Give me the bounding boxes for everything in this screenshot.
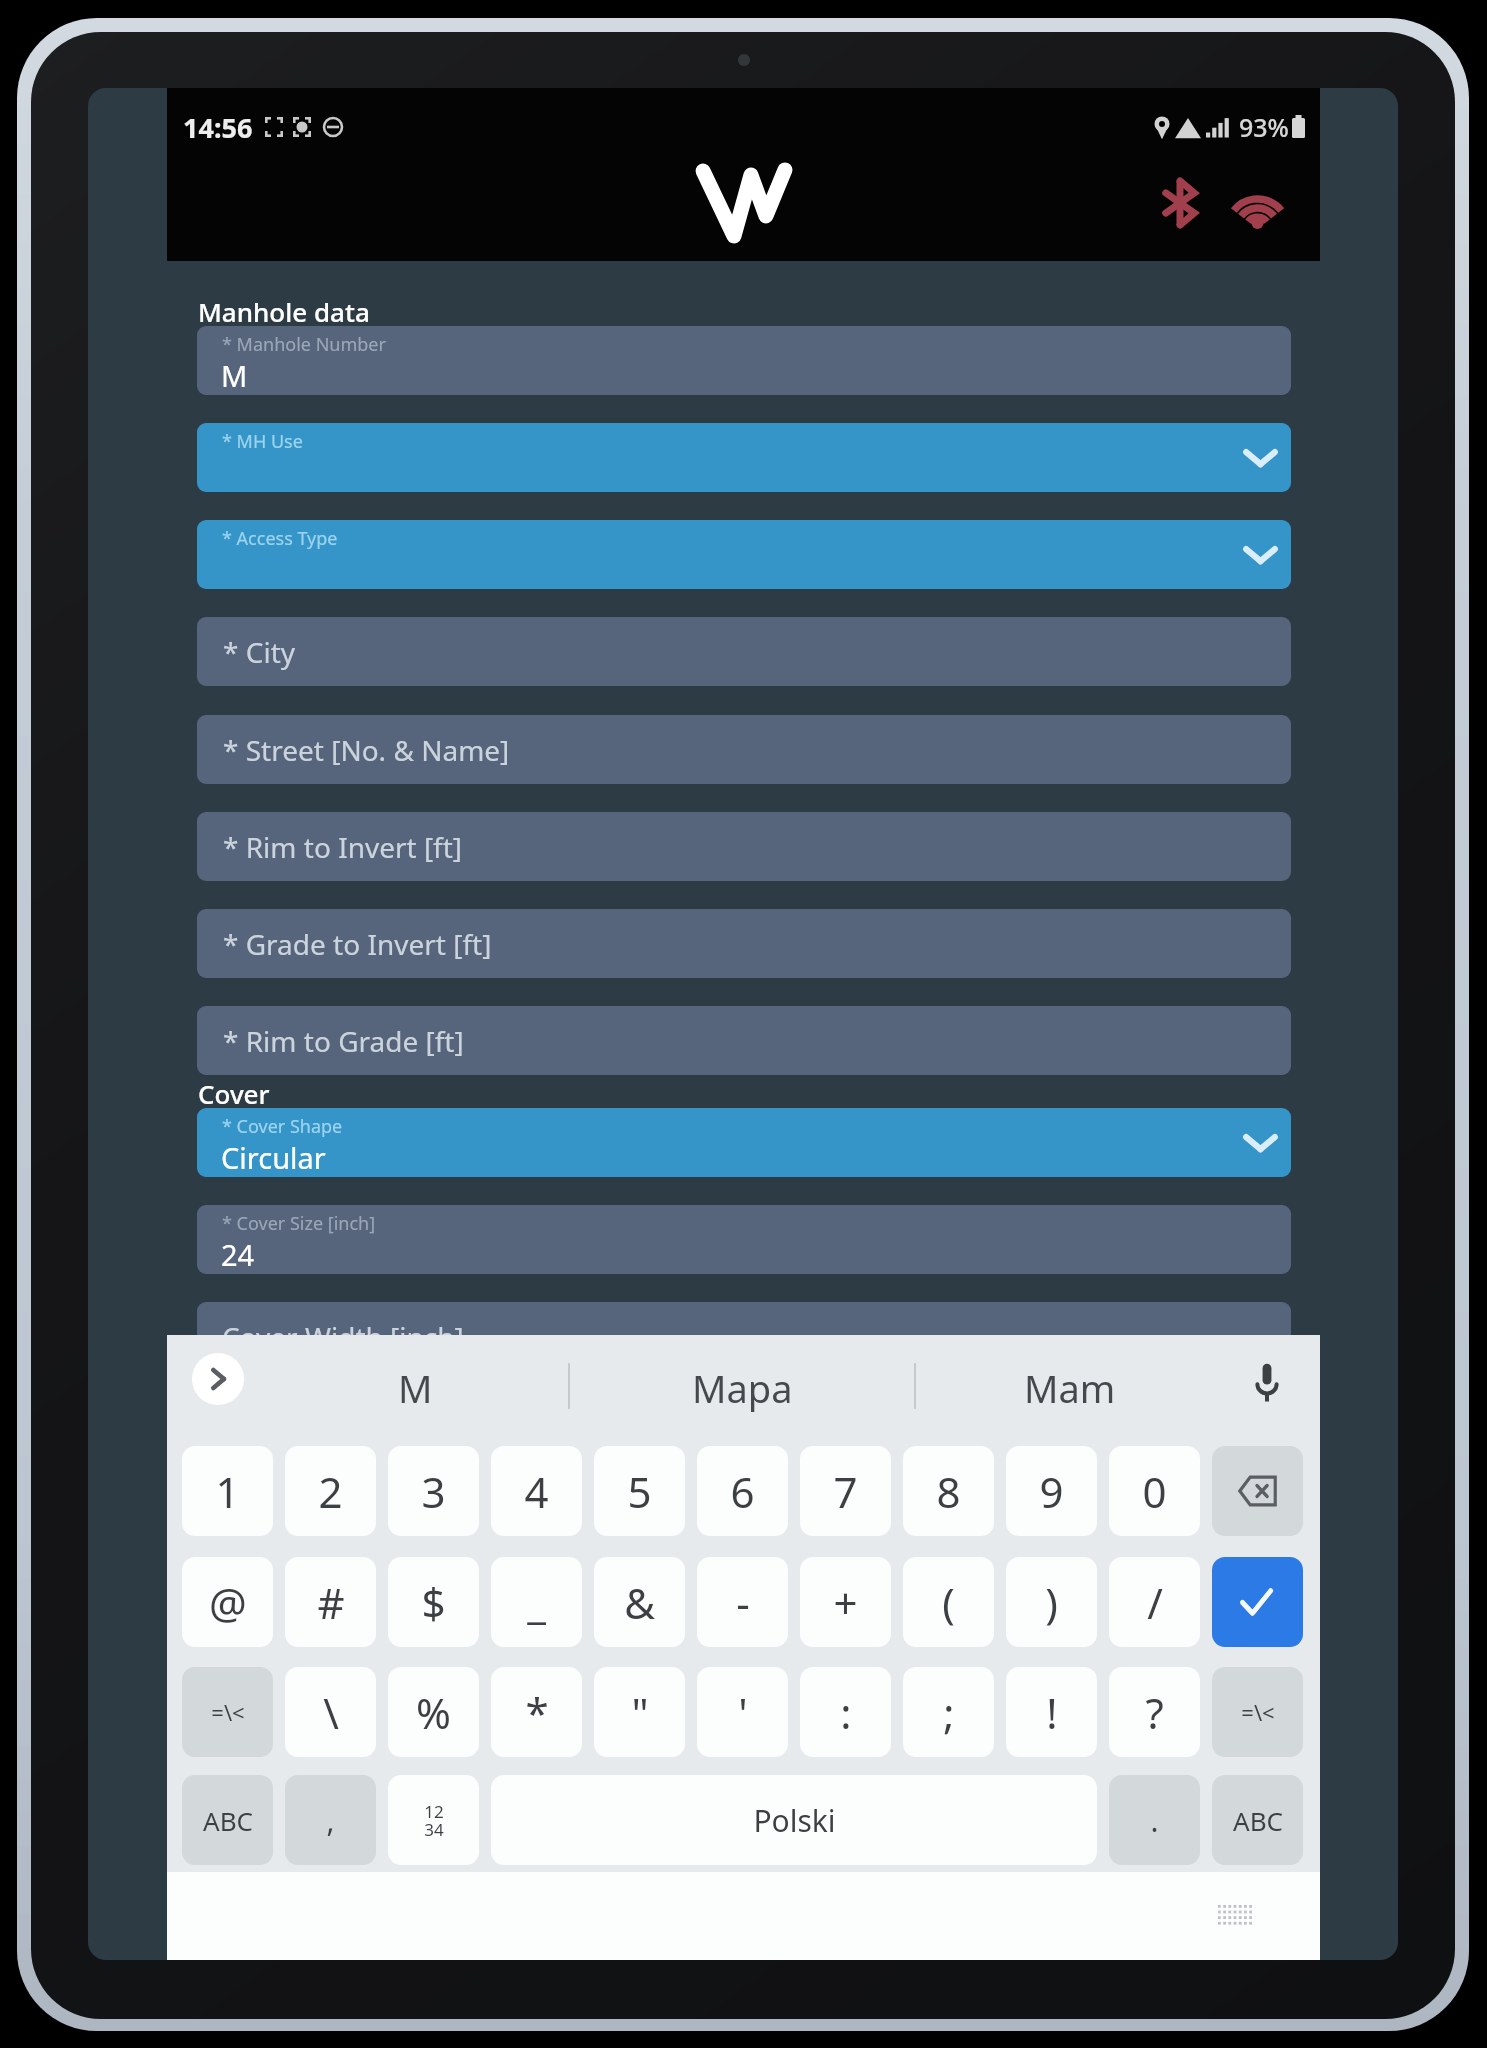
staticText: %: [416, 1684, 451, 1741]
button[interactable]: ): [1006, 1557, 1097, 1647]
button[interactable]: \: [285, 1667, 376, 1757]
staticText: \: [323, 1684, 339, 1741]
button[interactable]: -: [697, 1557, 788, 1647]
button[interactable]: Open MH Use dropdown: [1236, 433, 1285, 482]
button[interactable]: * Cover Size [inch]: [197, 1205, 1291, 1274]
button[interactable]: +: [800, 1557, 891, 1647]
button[interactable]: Mapa: [642, 1335, 842, 1441]
staticText: * Cover Shape: [222, 1114, 343, 1139]
button[interactable]: Expand toolbar: [192, 1353, 244, 1405]
button[interactable]: * Rim to Grade [ft]: [197, 1006, 1291, 1075]
button[interactable]: Open Cover Shape dropdown: [1236, 1118, 1285, 1167]
button[interactable]: Mam: [970, 1335, 1170, 1441]
staticText: M: [221, 356, 248, 395]
button[interactable]: 3: [388, 1446, 479, 1536]
button[interactable]: * Rim to Invert [ft]: [197, 812, 1291, 881]
button[interactable]: Open Access Type dropdown: [1236, 530, 1285, 579]
button[interactable]: 4: [491, 1446, 582, 1536]
staticText: ABC: [203, 1803, 253, 1838]
staticText: * Manhole Number: [222, 332, 386, 357]
button[interactable]: * Cover Shape: [197, 1108, 1291, 1177]
staticText: 14:56: [183, 109, 253, 146]
button[interactable]: ;: [903, 1667, 994, 1757]
button[interactable]: ,: [285, 1775, 376, 1865]
staticText: Cover: [198, 1076, 270, 1111]
button[interactable]: Cover Width [inch]: [197, 1302, 1291, 1371]
button[interactable]: Backspace: [1212, 1446, 1303, 1536]
button[interactable]: 2: [285, 1446, 376, 1536]
staticText: 24: [221, 1235, 255, 1274]
staticText: M: [398, 1362, 433, 1414]
button[interactable]: M: [315, 1335, 515, 1441]
button[interactable]: * Access Type: [197, 520, 1291, 589]
button[interactable]: 12 34: [388, 1775, 479, 1865]
staticText: 2: [318, 1463, 343, 1520]
staticText: =\<: [211, 1697, 245, 1727]
button[interactable]: #: [285, 1557, 376, 1647]
button[interactable]: :: [800, 1667, 891, 1757]
staticText: /: [1147, 1574, 1163, 1631]
staticText: 12 34: [424, 1800, 444, 1841]
staticText: 3: [421, 1463, 446, 1520]
button[interactable]: * Manhole Number: [197, 326, 1291, 395]
staticText: (: [942, 1574, 955, 1631]
button[interactable]: ?: [1109, 1667, 1200, 1757]
staticText: #: [317, 1574, 345, 1631]
button[interactable]: Voice input: [1243, 1359, 1291, 1407]
button[interactable]: 7: [800, 1446, 891, 1536]
button[interactable]: *: [491, 1667, 582, 1757]
button[interactable]: * Street [No. & Name]: [197, 715, 1291, 784]
button[interactable]: * City: [197, 617, 1291, 686]
staticText: 5: [627, 1463, 652, 1520]
button[interactable]: 6: [697, 1446, 788, 1536]
button[interactable]: 1: [182, 1446, 273, 1536]
button[interactable]: Polski: [491, 1775, 1097, 1865]
button[interactable]: .: [1109, 1775, 1200, 1865]
staticText: +: [833, 1574, 858, 1631]
staticText: !: [1046, 1684, 1058, 1741]
staticText: =\<: [1241, 1697, 1275, 1727]
button[interactable]: Enter: [1212, 1557, 1303, 1647]
button[interactable]: ': [697, 1667, 788, 1757]
button[interactable]: ": [594, 1667, 685, 1757]
staticText: 6: [730, 1463, 755, 1520]
staticText: ;: [943, 1684, 955, 1741]
button[interactable]: =\<: [182, 1667, 273, 1757]
staticText: 4: [524, 1463, 549, 1520]
staticText: * Cover Size [inch]: [222, 1211, 376, 1236]
button[interactable]: $: [388, 1557, 479, 1647]
staticText: Manhole data: [198, 294, 370, 329]
button[interactable]: (: [903, 1557, 994, 1647]
button[interactable]: %: [388, 1667, 479, 1757]
staticText: 7: [833, 1463, 858, 1520]
button[interactable]: 5: [594, 1446, 685, 1536]
staticText: @: [209, 1574, 247, 1631]
staticText: -: [736, 1574, 750, 1631]
staticText: ): [1045, 1574, 1058, 1631]
staticText: Cover Width [inch]: [222, 1318, 464, 1356]
staticText: * Grade to Invert [ft]: [223, 925, 492, 963]
staticText: ': [738, 1684, 748, 1741]
button[interactable]: @: [182, 1557, 273, 1647]
staticText: * City: [223, 633, 296, 671]
button[interactable]: * MH Use: [197, 423, 1291, 492]
button[interactable]: !: [1006, 1667, 1097, 1757]
button[interactable]: * Grade to Invert [ft]: [197, 909, 1291, 978]
button[interactable]: ABC: [182, 1775, 273, 1865]
staticText: * Rim to Grade [ft]: [223, 1022, 464, 1060]
other: Bluetooth: [1163, 179, 1197, 227]
button[interactable]: =\<: [1212, 1667, 1303, 1757]
staticText: * Rim to Invert [ft]: [223, 828, 463, 866]
staticText: :: [840, 1684, 852, 1741]
button[interactable]: &: [594, 1557, 685, 1647]
button[interactable]: 9: [1006, 1446, 1097, 1536]
staticText: &: [624, 1574, 655, 1631]
staticText: * Access Type: [222, 526, 338, 551]
button[interactable]: 8: [903, 1446, 994, 1536]
button[interactable]: 0: [1109, 1446, 1200, 1536]
button[interactable]: ABC: [1212, 1775, 1303, 1865]
button[interactable]: _: [491, 1557, 582, 1647]
staticText: ?: [1145, 1684, 1164, 1741]
staticText: .: [1150, 1800, 1159, 1841]
button[interactable]: /: [1109, 1557, 1200, 1647]
